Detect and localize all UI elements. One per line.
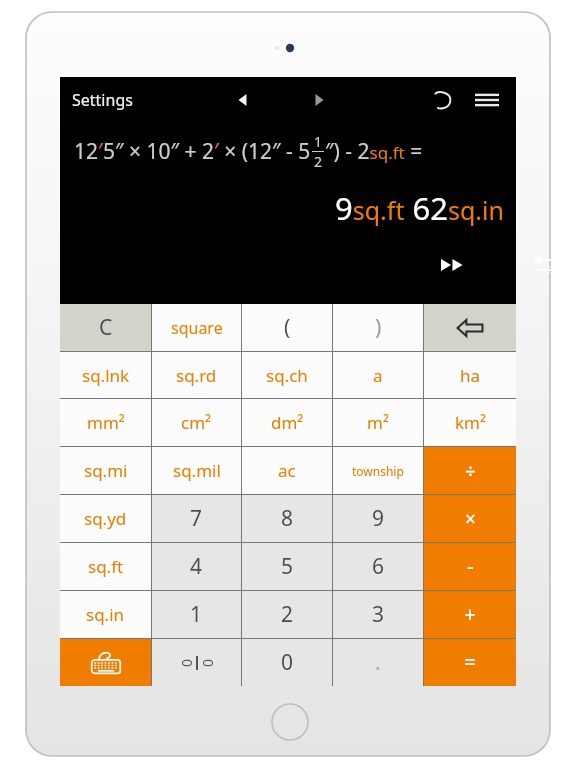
button[interactable]: Backspace <box>424 304 516 351</box>
staticText: ha <box>460 364 481 387</box>
button[interactable]: township <box>333 447 423 494</box>
staticText: = <box>464 648 477 677</box>
button[interactable]: sq.ch <box>242 352 332 398</box>
staticText: 6 <box>372 552 385 581</box>
staticText: sq.mi <box>84 459 128 482</box>
staticText: m² <box>367 411 389 434</box>
button[interactable]: a <box>333 352 423 398</box>
staticText: C <box>99 313 113 342</box>
staticText: township <box>352 463 404 479</box>
staticText: dm² <box>271 411 304 434</box>
staticText: ÷ <box>465 458 476 484</box>
staticText: 1 <box>314 132 323 151</box>
staticText: sq.in <box>86 603 125 626</box>
button[interactable]: 4 <box>152 543 241 590</box>
staticText: cm² <box>181 411 212 434</box>
button[interactable]: sq.ft <box>60 543 151 590</box>
button[interactable]: 5 <box>242 543 332 590</box>
button[interactable]: m² <box>333 399 423 446</box>
button[interactable]: sq.rd <box>152 352 241 398</box>
staticText: × <box>465 506 476 532</box>
button[interactable]: sq.mil <box>152 447 241 494</box>
button[interactable]: Fast forward <box>430 243 474 287</box>
staticText: sq.yd <box>84 507 127 530</box>
button[interactable]: Keyboard <box>60 639 151 686</box>
button[interactable]: Swap units <box>524 243 568 287</box>
staticText: sq.rd <box>176 364 217 387</box>
button[interactable]: sq.in <box>60 591 151 638</box>
button[interactable]: ÷ <box>424 447 516 494</box>
staticText: - <box>467 552 474 581</box>
button[interactable]: sq.mi <box>60 447 151 494</box>
button[interactable]: ( <box>242 304 332 351</box>
staticText: 3 <box>372 600 385 629</box>
button[interactable]: - <box>424 543 516 590</box>
button[interactable]: 8 <box>242 495 332 542</box>
button[interactable]: Undo <box>422 79 464 121</box>
staticText: ac <box>278 459 296 482</box>
staticText: + <box>464 600 477 629</box>
button[interactable]: ha <box>424 352 516 398</box>
button[interactable]: 9 <box>333 495 423 542</box>
staticText: 7 <box>190 504 203 533</box>
staticText: sq.ft <box>88 555 124 578</box>
staticText: km² <box>455 411 486 434</box>
button[interactable]: dm² <box>242 399 332 446</box>
button[interactable]: km² <box>424 399 516 446</box>
button[interactable]: Settings <box>60 83 141 117</box>
button[interactable]: × <box>424 495 516 542</box>
staticText: a <box>373 364 383 387</box>
staticText: square <box>171 317 223 339</box>
staticText: 1 <box>190 600 203 629</box>
staticText: sq.lnk <box>82 364 130 387</box>
button[interactable]: 7 <box>152 495 241 542</box>
button[interactable]: 1 <box>152 591 241 638</box>
staticText: 9sq.ft 62sq.in <box>335 187 504 229</box>
staticText: 4 <box>190 552 203 581</box>
staticText: ) <box>375 313 382 342</box>
button[interactable]: 6 <box>333 543 423 590</box>
staticText: 0 <box>177 658 196 667</box>
staticText: sq.mil <box>173 459 221 482</box>
staticText: 8 <box>281 504 294 533</box>
button[interactable]: Previous <box>223 81 261 119</box>
button[interactable]: Fraction <box>152 639 241 686</box>
button[interactable]: 0 <box>242 639 332 686</box>
staticText: 0 <box>198 658 217 667</box>
staticText: ″) - 2sq.ft = <box>325 137 423 166</box>
button[interactable]: Menu <box>464 77 510 123</box>
button[interactable]: ) <box>333 304 423 351</box>
button[interactable]: 2 <box>242 591 332 638</box>
button[interactable]: C <box>60 304 151 351</box>
staticText: 9 <box>372 504 385 533</box>
staticText: Settings <box>72 89 133 111</box>
button[interactable]: square <box>152 304 241 351</box>
staticText: 5 <box>281 552 294 581</box>
button[interactable]: = <box>424 639 516 686</box>
staticText: 2 <box>314 152 323 171</box>
button[interactable]: sq.yd <box>60 495 151 542</box>
button[interactable]: ac <box>242 447 332 494</box>
button[interactable]: Next <box>301 81 339 119</box>
button[interactable]: 3 <box>333 591 423 638</box>
button[interactable]: cm² <box>152 399 241 446</box>
button[interactable]: + <box>424 591 516 638</box>
button[interactable]: mm² <box>60 399 151 446</box>
staticText: . <box>375 648 381 677</box>
staticText: sq.ch <box>266 364 308 387</box>
staticText: mm² <box>87 411 125 434</box>
staticText: 2 <box>281 600 294 629</box>
staticText: 12′5″ × 10″ + 2′ × (12″ - 5 <box>74 137 311 166</box>
button[interactable]: sq.lnk <box>60 352 151 398</box>
staticText: 0 <box>281 648 294 677</box>
staticText: ( <box>284 313 291 342</box>
